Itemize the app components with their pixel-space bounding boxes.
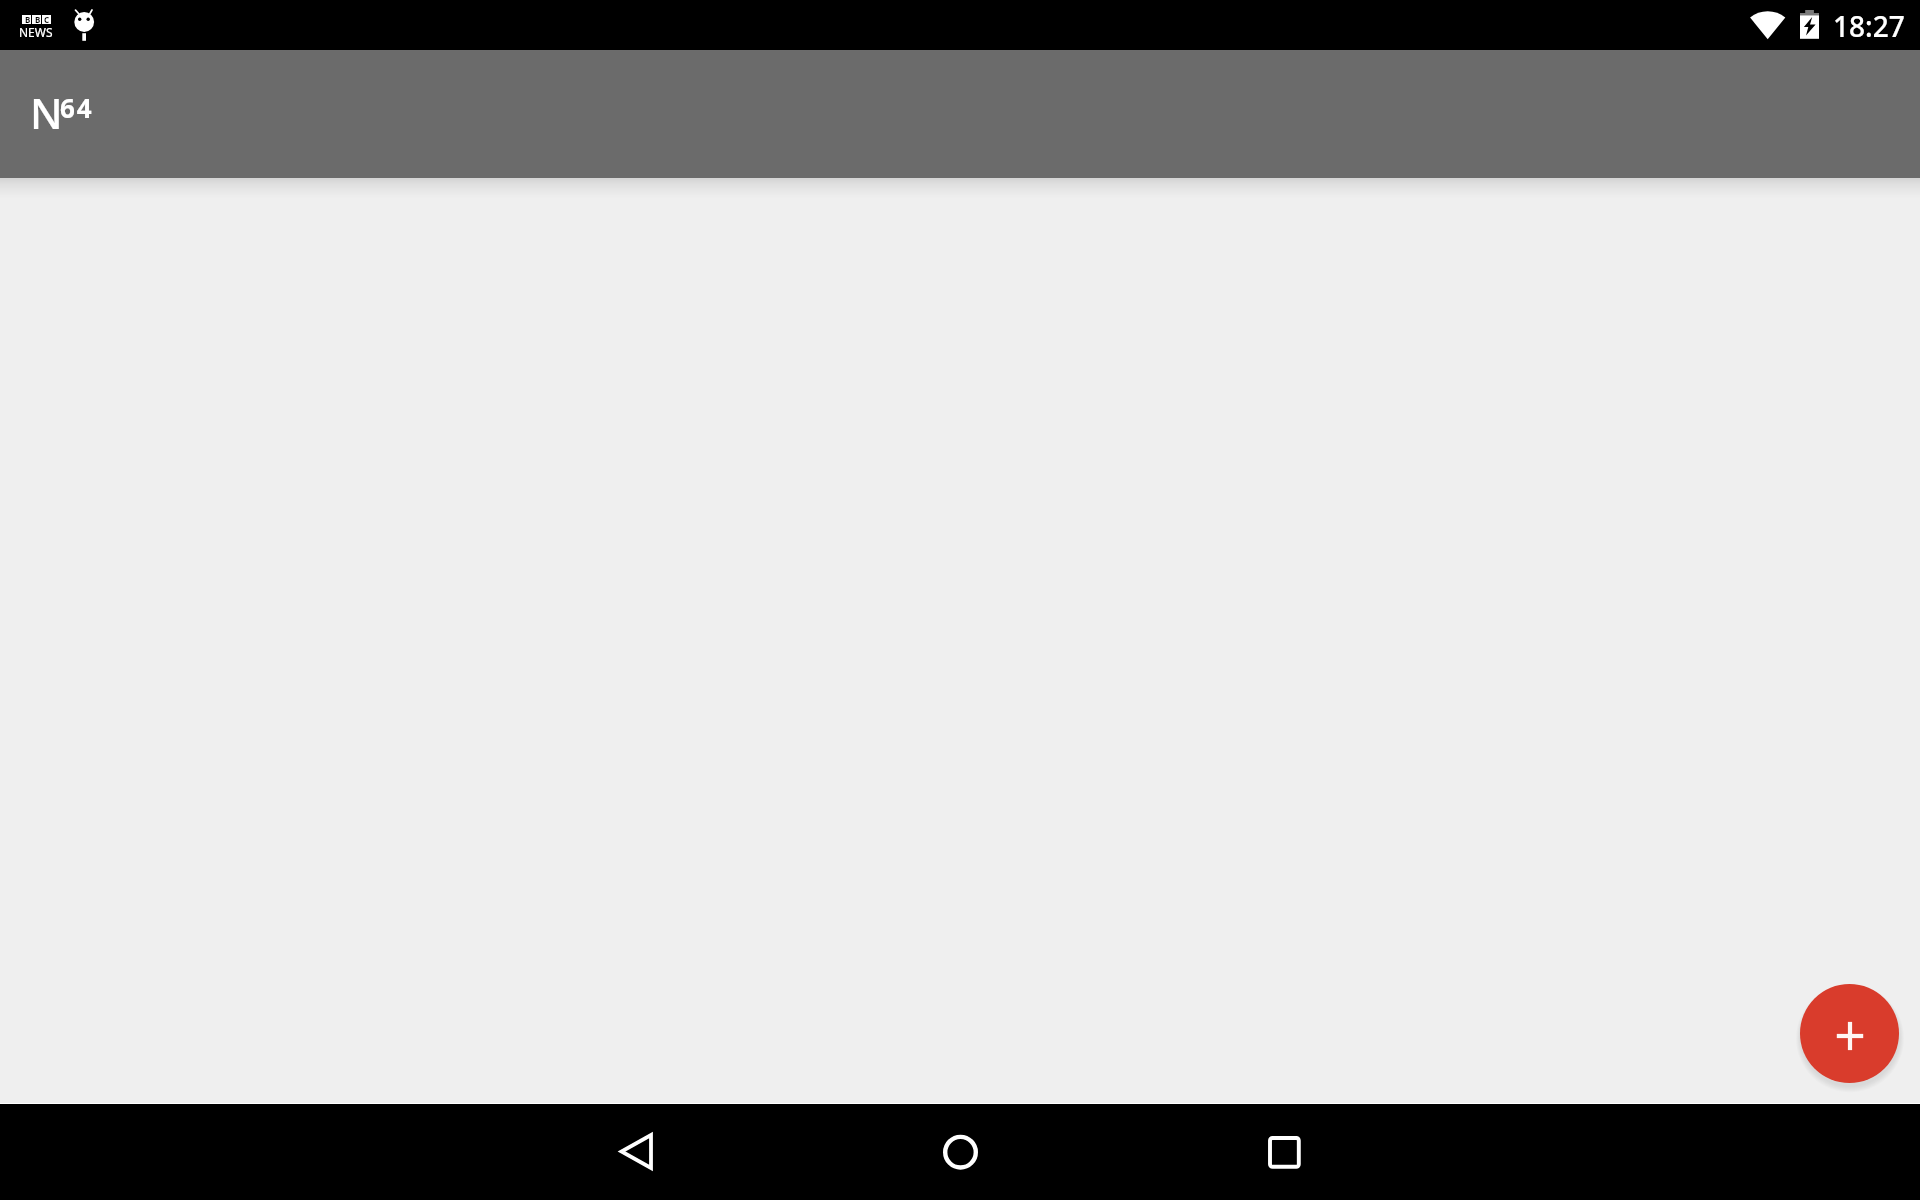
- staticText: B: [25, 14, 31, 25]
- staticText: NEWS: [19, 24, 53, 40]
- staticText: B: [35, 14, 41, 25]
- button[interactable]: Recent apps: [1236, 1104, 1332, 1200]
- staticText: N: [30, 84, 63, 141]
- staticText: 64: [60, 90, 94, 125]
- staticText: 18:27: [1833, 7, 1905, 45]
- button[interactable]: Back: [588, 1104, 684, 1200]
- button[interactable]: Home: [912, 1103, 1008, 1199]
- button[interactable]: Add: [1800, 984, 1899, 1083]
- button[interactable]: [0, 50, 1920, 178]
- staticText: C: [44, 14, 50, 25]
